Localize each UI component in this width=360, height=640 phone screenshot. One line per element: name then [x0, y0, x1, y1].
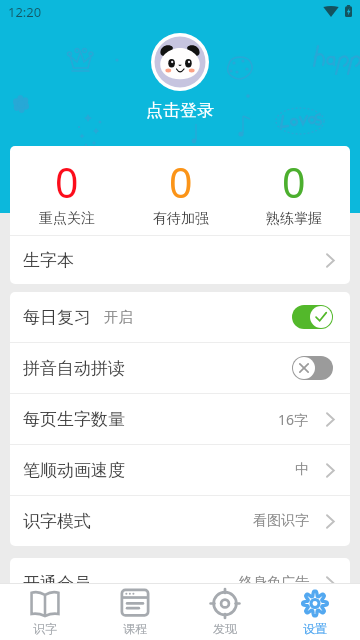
button[interactable]: 课程: [90, 584, 180, 640]
button[interactable]: 发现: [180, 584, 270, 640]
staticText: 课程: [123, 621, 147, 636]
button[interactable]: 设置: [270, 584, 360, 640]
button[interactable]: Profile avatar: [151, 33, 209, 91]
button[interactable]: 拼音自动拼读: [10, 343, 350, 393]
staticText: 重点关注: [39, 210, 95, 228]
button[interactable]: 0: [10, 146, 124, 235]
staticText: 看图识字: [253, 512, 309, 530]
button[interactable]: 每日复习: [10, 292, 350, 342]
staticText: 0: [282, 154, 306, 210]
button[interactable]: 0: [237, 146, 350, 235]
button[interactable]: 识字: [0, 584, 90, 640]
staticText: 拼音自动拼读: [23, 358, 125, 379]
button[interactable]: Switch on: [292, 305, 333, 329]
button[interactable]: 笔顺动画速度: [10, 445, 350, 495]
staticText: 发现: [213, 621, 237, 636]
staticText: 终身免广告: [239, 574, 309, 583]
button[interactable]: 识字模式: [10, 496, 350, 546]
staticText: 生字本: [23, 250, 74, 271]
button[interactable]: 开通会员: [10, 558, 350, 583]
staticText: 每页生字数量: [23, 409, 125, 430]
staticText: 开通会员: [23, 573, 91, 583]
staticText: 16字: [278, 410, 309, 429]
staticText: 开启: [104, 308, 133, 326]
button[interactable]: 0: [124, 146, 237, 235]
button[interactable]: 每页生字数量: [10, 394, 350, 444]
staticText: 中: [295, 461, 309, 479]
staticText: 识字: [33, 621, 57, 636]
staticText: 熟练掌握: [266, 210, 322, 228]
staticText: 笔顺动画速度: [23, 460, 125, 481]
staticText: 设置: [303, 621, 327, 636]
staticText: 12:20: [8, 3, 42, 21]
staticText: 每日复习: [23, 307, 91, 328]
button[interactable]: 点击登录: [140, 98, 220, 123]
staticText: 0: [169, 154, 193, 210]
button[interactable]: Switch off: [292, 356, 333, 380]
staticText: 有待加强: [153, 210, 209, 228]
button[interactable]: 生字本: [10, 236, 350, 284]
staticText: 0: [55, 154, 79, 210]
staticText: 点击登录: [146, 100, 214, 121]
staticText: 识字模式: [23, 511, 91, 532]
